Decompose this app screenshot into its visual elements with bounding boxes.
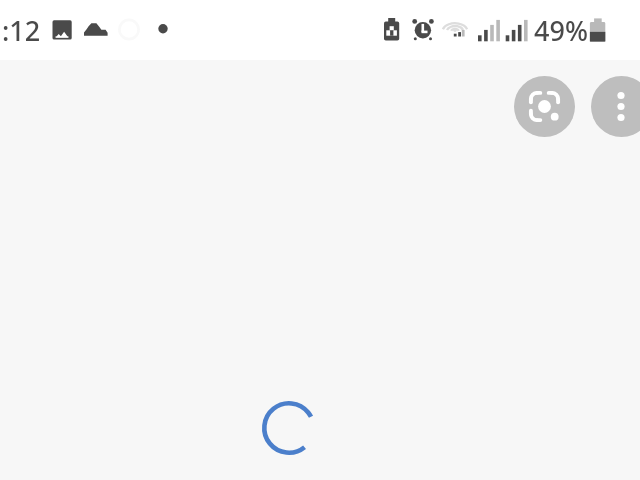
button[interactable]: More options xyxy=(591,76,640,137)
button[interactable]: Search with Google Lens xyxy=(514,76,575,137)
staticText: :12 xyxy=(2,12,41,49)
staticText: 49% xyxy=(534,12,588,49)
